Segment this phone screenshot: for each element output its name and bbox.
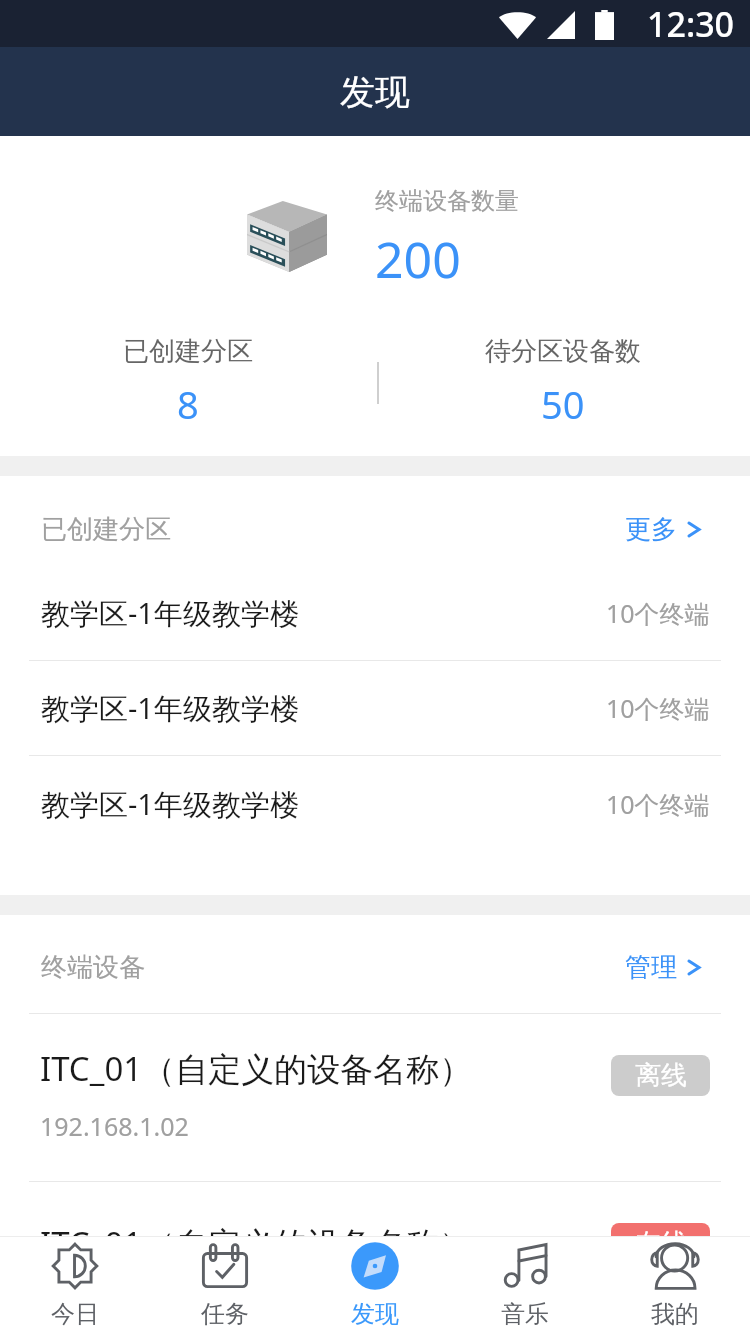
staticText: 发现 [340, 70, 410, 114]
button[interactable]: ITC_01（自定义的设备名称） [0, 1014, 750, 1181]
staticText: 192.168.1.02 [40, 1109, 189, 1143]
staticText: 教学区-1年级教学楼 [41, 688, 299, 728]
staticText: 200 [375, 225, 461, 293]
staticText: ITC_01（自定义的设备名称） [40, 1046, 473, 1091]
button[interactable]: 管理 [595, 937, 750, 998]
staticText: 教学区-1年级教学楼 [41, 593, 299, 633]
button[interactable]: 今日 [0, 1237, 150, 1334]
staticText: 192.168.1.02 [40, 1284, 189, 1318]
button[interactable]: 更多 [595, 499, 750, 560]
button[interactable]: 教学区-1年级教学楼 [0, 566, 750, 660]
staticText: 终端设备 [41, 951, 145, 984]
staticText: 教学区-1年级教学楼 [41, 784, 299, 824]
staticText: 10个终端 [606, 596, 710, 630]
staticText: 在线 [635, 1227, 687, 1260]
staticText: 今日 [51, 1299, 99, 1329]
staticText: 离线 [635, 1059, 687, 1092]
other: 任务 [201, 1242, 249, 1290]
staticText: 待分区设备数 [485, 335, 641, 368]
other: 今日 [51, 1242, 99, 1290]
button[interactable]: 教学区-1年级教学楼 [0, 756, 750, 851]
staticText: 我的 [651, 1299, 699, 1329]
staticText: 10个终端 [606, 691, 710, 725]
other: 我的 [651, 1242, 699, 1290]
button[interactable]: 音乐 [450, 1237, 600, 1334]
staticText: 12:30 [647, 1, 735, 47]
staticText: 发现 [351, 1299, 399, 1329]
button[interactable]: 任务 [150, 1237, 300, 1334]
staticText: 管理 [625, 951, 677, 984]
other: 音乐 [501, 1242, 549, 1290]
staticText: 终端设备数量 [375, 186, 519, 216]
button[interactable]: 已创建分区 [0, 329, 375, 436]
staticText: 8 [177, 378, 199, 430]
staticText: 任务 [201, 1299, 249, 1329]
staticText: 已创建分区 [41, 513, 171, 546]
button[interactable]: 发现 [300, 1237, 450, 1334]
button[interactable]: 离线 [611, 1055, 710, 1096]
button[interactable]: 教学区-1年级教学楼 [0, 661, 750, 755]
staticText: 10个终端 [606, 787, 710, 821]
staticText: 更多 [625, 513, 677, 546]
staticText: 已创建分区 [123, 335, 253, 368]
staticText: 50 [541, 378, 585, 430]
button[interactable]: 在线 [611, 1223, 710, 1264]
button[interactable]: 我的 [600, 1237, 750, 1334]
staticText: ITC_01（自定义的设备名称） [40, 1221, 473, 1266]
staticText: 音乐 [501, 1299, 549, 1329]
button[interactable]: 待分区设备数 [375, 329, 750, 436]
button[interactable]: ITC_01（自定义的设备名称） [0, 1182, 750, 1334]
other: 发现 [351, 1242, 399, 1290]
